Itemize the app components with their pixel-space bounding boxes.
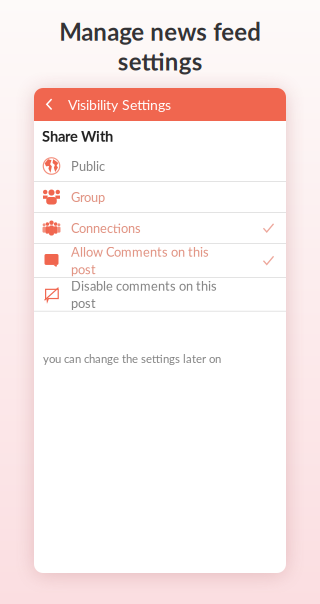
button[interactable]: Group — [34, 182, 286, 212]
button[interactable]: Disable comments on this post — [34, 278, 286, 311]
staticText: Share With — [42, 127, 113, 145]
staticText: you can change the settings later on — [43, 352, 221, 365]
button[interactable]: Connections — [34, 213, 286, 243]
staticText: Allow Comments on this post — [71, 244, 209, 277]
button[interactable]: Visibility Settings — [34, 88, 286, 121]
staticText: Public — [71, 158, 105, 174]
staticText: Visibility Settings — [68, 96, 171, 113]
staticText: Group — [71, 189, 105, 205]
staticText: Disable comments on this post — [71, 278, 217, 311]
staticText: Connections — [71, 220, 141, 236]
button[interactable]: Public — [34, 151, 286, 181]
button[interactable]: Allow Comments on this post — [34, 244, 286, 277]
staticText: Manage news feed settings — [59, 17, 261, 76]
